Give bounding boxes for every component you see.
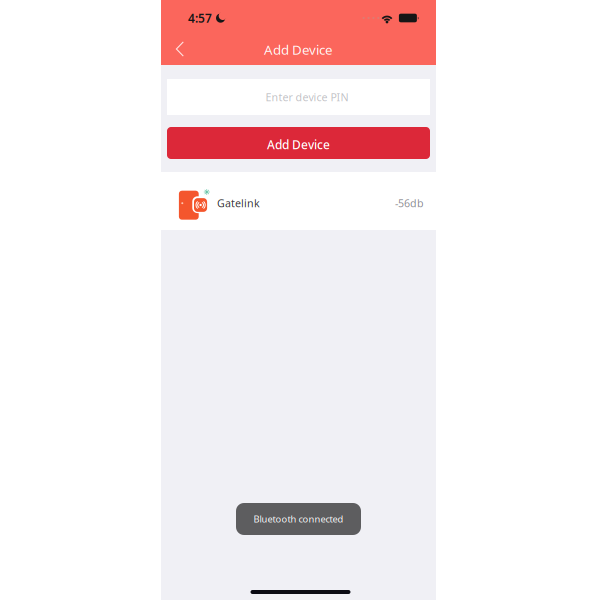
button[interactable]: Gatelink: [161, 172, 436, 230]
staticText: Bluetooth connected: [253, 513, 343, 525]
button[interactable]: Enter device PIN: [167, 79, 430, 115]
button[interactable]: Add Device: [167, 127, 430, 159]
staticText: 4:57: [188, 10, 212, 26]
staticText: Add Device: [267, 136, 330, 152]
staticText: Enter device PIN: [265, 90, 348, 104]
staticText: -56db: [395, 196, 424, 210]
staticText: Add Device: [264, 41, 333, 58]
button[interactable]: Back: [169, 33, 191, 65]
staticText: Gatelink: [217, 196, 260, 210]
